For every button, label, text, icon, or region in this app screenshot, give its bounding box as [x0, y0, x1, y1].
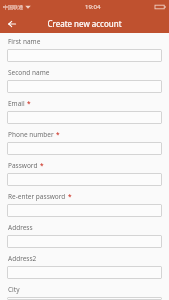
staticText: 中国联通	[3, 4, 23, 10]
button[interactable]	[7, 173, 162, 186]
staticText: Address	[8, 223, 33, 232]
button[interactable]: Back	[4, 16, 19, 31]
button[interactable]	[7, 111, 162, 124]
staticText: *	[56, 130, 60, 139]
staticText: *	[40, 161, 44, 170]
button[interactable]	[7, 80, 162, 93]
button[interactable]	[7, 142, 162, 155]
staticText: Password	[8, 161, 38, 170]
staticText: Re-enter password	[8, 192, 66, 201]
staticText: First name	[8, 37, 41, 46]
staticText: Address2	[8, 254, 37, 263]
staticText: Phone number	[8, 130, 54, 139]
staticText: Second name	[8, 68, 50, 77]
button[interactable]	[7, 204, 162, 217]
staticText: *	[68, 192, 72, 201]
button[interactable]	[7, 297, 162, 300]
staticText: 19:04	[85, 3, 101, 11]
staticText: City	[8, 285, 20, 294]
button[interactable]	[7, 266, 162, 279]
button[interactable]	[7, 49, 162, 62]
staticText: *	[27, 99, 31, 108]
staticText: Email	[8, 99, 25, 108]
button[interactable]	[7, 235, 162, 248]
staticText: Create new account	[47, 18, 122, 29]
